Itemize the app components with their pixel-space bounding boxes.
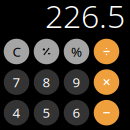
staticText: 9 <box>72 73 80 91</box>
button[interactable]: 9 <box>64 69 89 95</box>
button[interactable]: 6 <box>64 100 89 125</box>
button[interactable]: Subtract <box>94 100 119 125</box>
button[interactable]: C <box>4 39 29 64</box>
staticText: C <box>12 43 20 60</box>
button[interactable]: 7 <box>4 69 29 95</box>
button[interactable]: 4 <box>4 100 29 125</box>
button[interactable]: Divide <box>94 39 119 64</box>
button[interactable]: 8 <box>34 69 59 95</box>
staticText: % <box>71 43 82 60</box>
button[interactable]: 5 <box>34 100 59 125</box>
staticText: 8 <box>42 73 50 91</box>
staticText: 5 <box>42 104 50 121</box>
button[interactable]: Plus or minus <box>34 39 59 64</box>
button[interactable]: % <box>64 39 89 64</box>
staticText: 7 <box>12 73 20 91</box>
button[interactable]: Multiply <box>94 69 119 95</box>
staticText: 226.5 <box>45 0 125 37</box>
staticText: 6 <box>72 104 80 121</box>
staticText: 4 <box>12 104 20 121</box>
